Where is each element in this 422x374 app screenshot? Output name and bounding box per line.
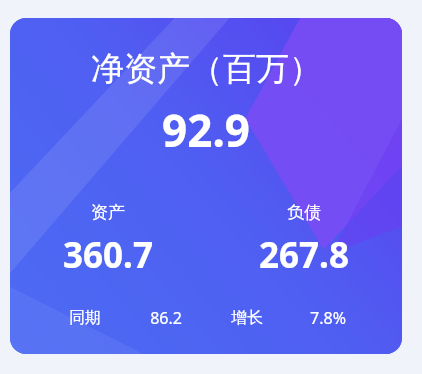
- staticText: 同期: [69, 308, 101, 328]
- staticText: 增长: [231, 308, 263, 328]
- staticText: 7.8%: [310, 307, 346, 329]
- button[interactable]: 资产: [10, 200, 206, 281]
- staticText: 资产: [91, 202, 125, 223]
- staticText: 86.2: [150, 307, 182, 329]
- button[interactable]: 增长: [206, 308, 287, 328]
- button[interactable]: 负债: [206, 200, 402, 281]
- staticText: 负债: [287, 202, 321, 223]
- staticText: 92.9: [162, 100, 250, 160]
- button[interactable]: 同期: [44, 308, 125, 328]
- button[interactable]: 7.8%: [287, 307, 368, 329]
- staticText: 净资产（百万）: [91, 48, 322, 90]
- button[interactable]: 86.2: [125, 307, 206, 329]
- staticText: 267.8: [259, 231, 349, 279]
- button[interactable]: 净资产概览卡片: [10, 18, 402, 354]
- staticText: 360.7: [63, 231, 153, 279]
